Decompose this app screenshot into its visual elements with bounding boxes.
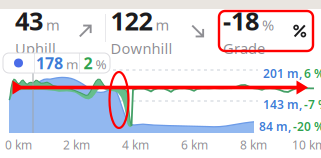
staticText: 43 [15, 4, 43, 37]
staticText: 2 km [63, 137, 90, 153]
staticText: Grade [223, 39, 265, 58]
staticText: 122 [110, 4, 152, 37]
staticText: 0 km [5, 137, 32, 153]
staticText: % [95, 55, 106, 73]
staticText: 6 % [304, 65, 321, 81]
staticText: 4 km [122, 137, 149, 153]
staticText: Downhill [110, 39, 172, 58]
staticText: 201 m, [263, 65, 302, 81]
staticText: m [155, 15, 169, 35]
staticText: -18 [223, 4, 259, 37]
staticText: 84 m, [259, 118, 291, 134]
staticText: m [46, 15, 60, 35]
staticText: -20 % [293, 118, 321, 134]
staticText: 8 km [240, 137, 267, 153]
staticText: 10 km [292, 137, 321, 153]
staticText: % [262, 15, 274, 35]
staticText: 2 [83, 52, 92, 74]
staticText: -7 % [304, 96, 321, 112]
staticText: 143 m, [263, 96, 302, 112]
staticText: Uphill [15, 39, 56, 58]
staticText: 178 [36, 52, 63, 74]
staticText: 6 km [181, 137, 208, 153]
staticText: m [66, 55, 78, 73]
